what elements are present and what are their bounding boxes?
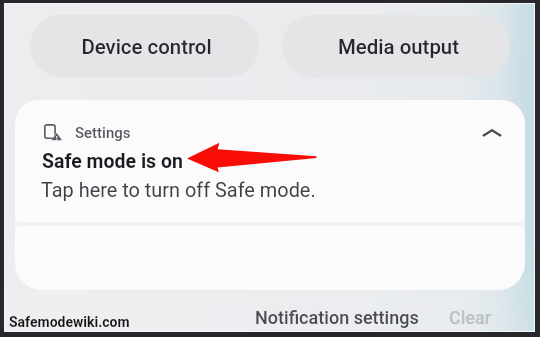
staticText: Tap here to turn off Safe mode. xyxy=(41,179,316,202)
staticText: Notification settings xyxy=(255,307,419,328)
button[interactable]: Device control xyxy=(30,15,259,77)
button[interactable]: Media output xyxy=(282,15,510,77)
button[interactable] xyxy=(253,304,277,332)
staticText: Safemodewiki.com xyxy=(9,314,130,330)
staticText: Safe mode is on xyxy=(42,150,183,173)
button[interactable]: Notification settings xyxy=(247,304,427,330)
staticText: Device control xyxy=(81,35,212,59)
button[interactable]: Collapse notification xyxy=(476,117,508,149)
button[interactable]: Clear xyxy=(441,304,501,330)
staticText: Clear xyxy=(449,307,492,328)
staticText: Media output xyxy=(338,35,459,59)
button[interactable] xyxy=(15,100,525,222)
staticText: Settings xyxy=(75,124,131,142)
